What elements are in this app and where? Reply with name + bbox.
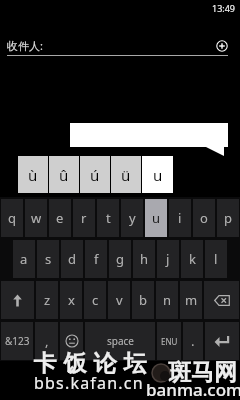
staticText: a	[20, 250, 28, 268]
staticText: 13:49	[212, 2, 236, 14]
button[interactable]: ü	[111, 156, 141, 193]
button[interactable]: j	[157, 240, 179, 278]
button[interactable]: l	[205, 240, 227, 278]
button[interactable]: ú	[80, 156, 110, 193]
staticText: i	[178, 209, 182, 227]
button[interactable]: w	[25, 199, 47, 237]
staticText: n	[163, 291, 172, 309]
staticText: r	[81, 209, 87, 227]
button[interactable]: ù	[18, 156, 48, 193]
staticText: l	[214, 250, 218, 268]
staticText: u	[152, 209, 161, 227]
staticText: û	[59, 165, 69, 185]
button[interactable]: Backspace	[204, 281, 239, 319]
button[interactable]: ENU	[157, 322, 181, 360]
staticText: t	[106, 209, 111, 227]
staticText: v	[116, 291, 123, 309]
button[interactable]: e	[49, 199, 71, 237]
button[interactable]: ,	[35, 322, 58, 360]
button[interactable]: u	[142, 156, 173, 193]
staticText: q	[8, 209, 16, 227]
button[interactable]: u	[145, 199, 167, 237]
staticText: e	[56, 209, 64, 227]
button[interactable]: c	[84, 281, 106, 319]
button[interactable]: Add recipient	[216, 40, 228, 52]
button[interactable]: û	[49, 156, 79, 193]
staticText: h	[140, 250, 149, 268]
staticText: .	[191, 332, 195, 350]
staticText: u	[153, 165, 163, 185]
button[interactable]: v	[108, 281, 130, 319]
button[interactable]: k	[181, 240, 203, 278]
button[interactable]: x	[60, 281, 82, 319]
button[interactable]: m	[180, 281, 202, 319]
staticText: g	[116, 250, 124, 268]
button[interactable]: n	[156, 281, 178, 319]
button[interactable]: g	[109, 240, 131, 278]
staticText: space	[107, 334, 134, 348]
button[interactable]: i	[169, 199, 191, 237]
staticText: x	[68, 291, 75, 309]
button[interactable]: s	[37, 240, 59, 278]
staticText: bbs.kafan.cn	[34, 372, 144, 394]
staticText: ü	[121, 165, 131, 185]
button[interactable]: h	[133, 240, 155, 278]
staticText: &123	[5, 334, 30, 348]
staticText: s	[45, 250, 52, 268]
staticText: 卡饭论坛	[30, 349, 150, 378]
staticText: c	[92, 291, 99, 309]
staticText: ENU	[161, 336, 178, 347]
button[interactable]: Enter	[205, 322, 239, 360]
staticText: 收件人:	[7, 38, 43, 53]
staticText: w	[31, 209, 42, 227]
button[interactable]: q	[1, 199, 23, 237]
button[interactable]: t	[97, 199, 119, 237]
staticText: b	[139, 291, 147, 309]
button[interactable]: f	[85, 240, 107, 278]
button[interactable]: r	[73, 199, 95, 237]
staticText: p	[224, 209, 232, 227]
staticText: d	[68, 250, 76, 268]
staticText: z	[44, 291, 51, 309]
staticText: m	[185, 291, 198, 309]
staticText: ù	[28, 165, 38, 185]
button[interactable]: y	[121, 199, 143, 237]
button[interactable]: b	[132, 281, 154, 319]
button[interactable]: Shift	[1, 281, 34, 319]
staticText: j	[166, 250, 170, 268]
staticText: o	[200, 209, 208, 227]
button[interactable]: d	[61, 240, 83, 278]
staticText: ú	[90, 165, 100, 185]
staticText: k	[189, 250, 196, 268]
staticText: ,	[45, 332, 49, 350]
button[interactable]: Emoji	[60, 322, 83, 360]
button[interactable]: &123	[1, 322, 33, 360]
staticText: 斑马网	[168, 358, 237, 387]
button[interactable]: p	[217, 199, 239, 237]
button[interactable]: o	[193, 199, 215, 237]
staticText: banma.com	[146, 378, 240, 400]
staticText: y	[129, 209, 136, 227]
button[interactable]: .	[183, 322, 203, 360]
button[interactable]: a	[13, 240, 35, 278]
button[interactable]: z	[36, 281, 58, 319]
button[interactable]: space	[85, 322, 155, 360]
staticText: f	[94, 250, 99, 268]
